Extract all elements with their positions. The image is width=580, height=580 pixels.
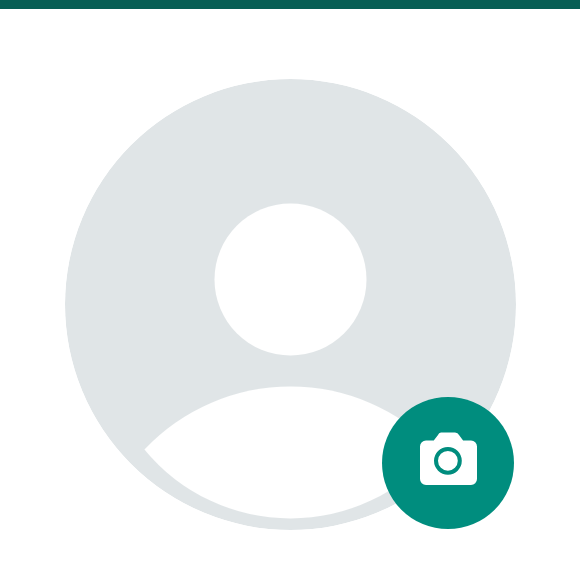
button[interactable]: Profile photo — [65, 79, 516, 530]
button[interactable]: Change profile photo — [382, 397, 514, 529]
